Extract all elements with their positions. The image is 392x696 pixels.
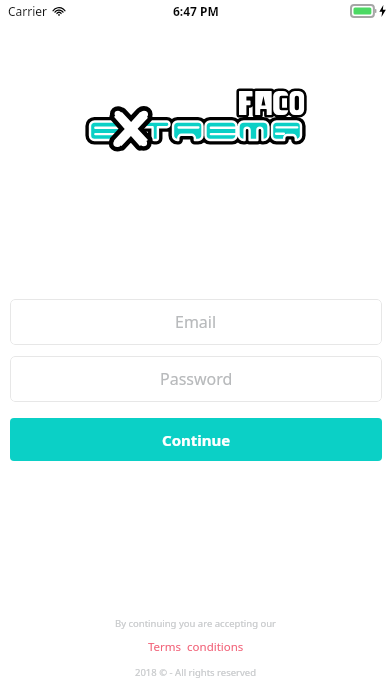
staticText: 6:47 PM	[173, 3, 219, 19]
staticText: Continue	[162, 430, 231, 450]
staticText: Carrier	[8, 3, 48, 19]
staticText: By continuing you are accepting our	[115, 617, 277, 630]
button[interactable]: Password	[10, 356, 382, 402]
button[interactable]: Terms conditions	[148, 639, 244, 655]
staticText: Email	[175, 311, 217, 333]
button[interactable]: Continue	[10, 418, 382, 461]
button[interactable]: Email	[10, 299, 382, 345]
staticText: Password	[160, 368, 233, 390]
staticText: Terms conditions	[148, 639, 244, 655]
staticText: 2018 © - All rights reserved	[135, 666, 257, 679]
